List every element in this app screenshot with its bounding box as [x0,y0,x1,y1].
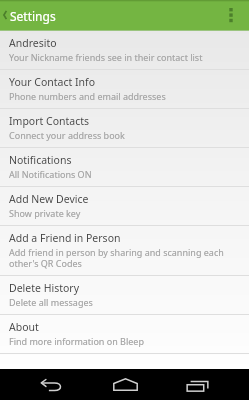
button[interactable]: Home [103,369,147,400]
button[interactable]: Back [28,369,72,400]
staticText: Delete History [9,281,80,295]
staticText: Add a Friend in Person [9,231,121,245]
staticText: Notifications [9,153,72,167]
button[interactable]: Back [0,0,56,30]
staticText: Find more information on Bleep [9,335,144,347]
button[interactable]: Recent apps [175,369,219,400]
button[interactable]: About [0,315,249,353]
button[interactable]: Add New Device [0,187,249,225]
staticText: Show private key [9,207,81,219]
button[interactable]: Add a Friend in Person [0,226,249,275]
staticText: Andresito [9,36,57,50]
staticText: Connect your address book [9,129,125,141]
staticText: Delete all messages [9,296,93,308]
staticText: Add friend in person by sharing and scan… [9,246,240,269]
button[interactable]: More options [220,0,242,30]
button[interactable]: Andresito [0,31,249,69]
staticText: Your Contact Info [9,75,96,89]
staticText: Add New Device [9,192,89,206]
staticText: All Notifications ON [9,168,92,180]
button[interactable]: Notifications [0,148,249,186]
staticText: Import Contacts [9,114,90,128]
button[interactable]: Delete History [0,276,249,314]
staticText: Phone numbers and email addresses [9,90,166,102]
button[interactable]: Your Contact Info [0,70,249,108]
staticText: About [9,320,39,334]
staticText: Settings [10,8,56,24]
button[interactable]: Import Contacts [0,109,249,147]
staticText: Your Nickname friends see in their conta… [9,51,203,63]
